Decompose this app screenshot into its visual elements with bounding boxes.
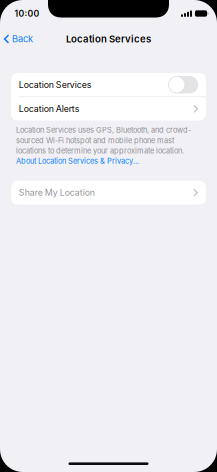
button[interactable]: Back bbox=[0, 30, 37, 48]
staticText: Back bbox=[12, 33, 33, 44]
staticText: 10:00 bbox=[14, 8, 39, 19]
button[interactable]: About Location Services & Privacy... bbox=[16, 157, 139, 166]
button[interactable]: Location Alerts bbox=[11, 97, 206, 121]
staticText: Location Services bbox=[19, 79, 92, 90]
staticText: Location Services uses GPS, Bluetooth, a… bbox=[16, 126, 191, 155]
staticText: Location Alerts bbox=[19, 103, 80, 114]
staticText: Location Services bbox=[66, 33, 151, 45]
button[interactable]: Share My Location bbox=[11, 181, 206, 205]
staticText: Share My Location bbox=[19, 187, 95, 198]
button[interactable]: Location Services bbox=[11, 73, 206, 96]
staticText: About Location Services & Privacy... bbox=[16, 157, 139, 166]
